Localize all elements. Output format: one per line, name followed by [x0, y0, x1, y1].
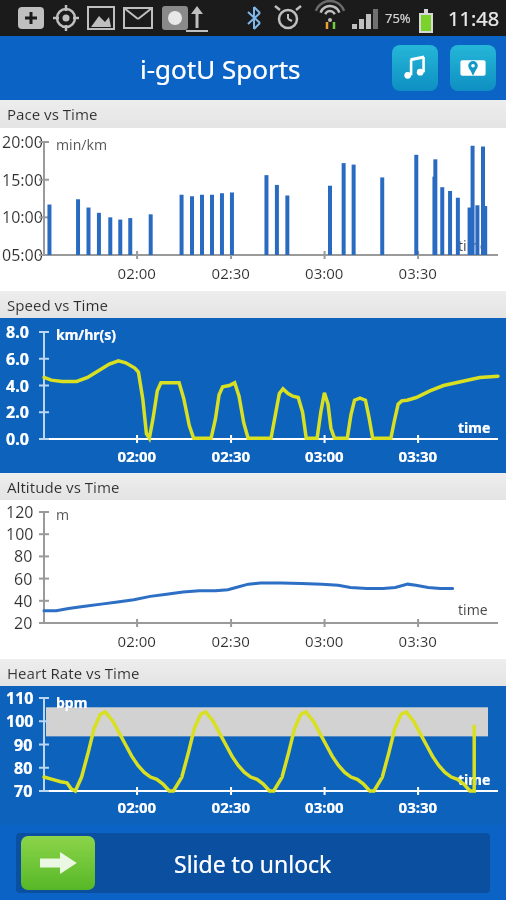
staticText: Altitude vs Time: [7, 477, 120, 497]
button[interactable]: Slide to unlock: [16, 833, 490, 893]
staticText: 11:48: [448, 5, 500, 32]
staticText: Heart Rate vs Time: [7, 663, 140, 683]
staticText: i-gotU Sports: [140, 51, 301, 86]
staticText: Speed vs Time: [7, 295, 108, 315]
staticText: Slide to unlock: [174, 848, 332, 879]
staticText: 75%: [385, 9, 411, 27]
button[interactable]: Slide to unlock: [21, 836, 95, 890]
button[interactable]: Music: [392, 45, 438, 91]
button[interactable]: Map: [450, 45, 496, 91]
staticText: Pace vs Time: [7, 104, 98, 124]
